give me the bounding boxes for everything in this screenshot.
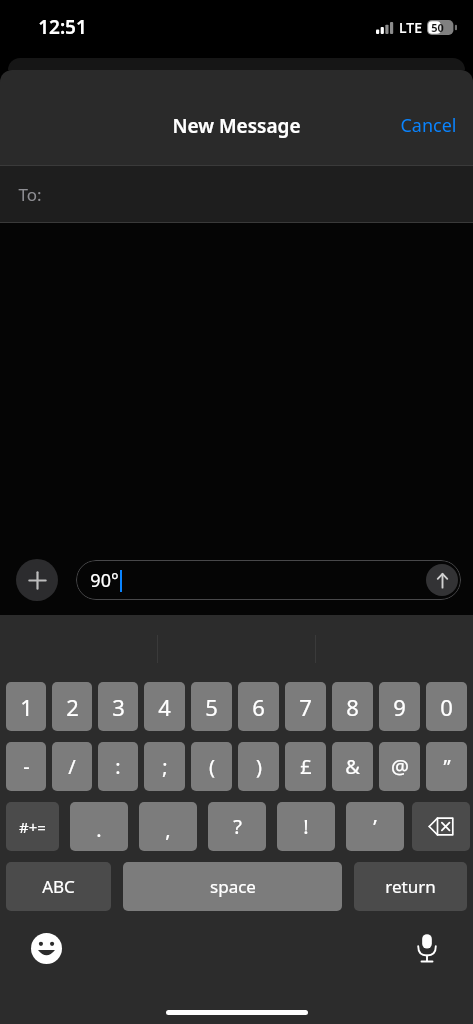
button[interactable]: ; xyxy=(144,742,185,791)
staticText: To: xyxy=(18,183,42,206)
button[interactable]: 2 xyxy=(52,682,92,731)
staticText: #+= xyxy=(19,817,46,837)
staticText: - xyxy=(23,753,30,780)
button[interactable]: Backspace xyxy=(412,802,470,851)
staticText: , xyxy=(165,816,171,843)
button[interactable]: : xyxy=(98,742,138,791)
button[interactable]: Send xyxy=(426,564,458,596)
staticText: return xyxy=(385,875,436,898)
staticText: ; xyxy=(162,753,168,780)
staticText: 5 xyxy=(205,692,218,722)
staticText: ( xyxy=(209,753,215,780)
button[interactable]: £ xyxy=(285,742,326,791)
button[interactable]: ” xyxy=(426,742,467,791)
button[interactable]: return xyxy=(354,862,467,911)
staticText: space xyxy=(210,875,256,898)
staticText: 2 xyxy=(66,692,79,722)
staticText: ” xyxy=(443,753,451,780)
button[interactable]: To: xyxy=(0,165,473,223)
staticText: . xyxy=(96,816,102,843)
staticText: @ xyxy=(391,753,409,780)
button[interactable]: 7 xyxy=(285,682,326,731)
button[interactable]: 5 xyxy=(191,682,232,731)
button[interactable]: 1 xyxy=(6,682,46,731)
button[interactable]: space xyxy=(123,862,342,911)
staticText: ABC xyxy=(42,875,75,898)
button[interactable]: ’ xyxy=(346,802,404,851)
button[interactable]: 6 xyxy=(238,682,279,731)
button[interactable]: 9 xyxy=(379,682,420,731)
staticText: / xyxy=(68,753,76,780)
staticText: 7 xyxy=(299,692,312,722)
button[interactable]: ) xyxy=(238,742,279,791)
button[interactable]: Cancel xyxy=(384,105,473,146)
button[interactable]: Emoji xyxy=(26,928,66,968)
staticText: 3 xyxy=(112,692,125,722)
staticText: 50 xyxy=(431,20,444,35)
button[interactable]: ABC xyxy=(6,862,111,911)
button[interactable]: Add attachment xyxy=(16,559,58,601)
button[interactable]: ? xyxy=(208,802,266,851)
button[interactable]: / xyxy=(52,742,92,791)
button[interactable]: @ xyxy=(379,742,420,791)
button[interactable]: Dictation xyxy=(407,928,447,968)
staticText: : xyxy=(115,753,121,780)
staticText: 12:51 xyxy=(38,14,87,40)
staticText: New Message xyxy=(172,113,301,139)
button[interactable]: 8 xyxy=(332,682,373,731)
staticText: & xyxy=(345,753,360,780)
staticText: £ xyxy=(300,753,312,780)
button[interactable]: #+= xyxy=(6,802,59,851)
button[interactable]: 3 xyxy=(98,682,138,731)
button[interactable]: & xyxy=(332,742,373,791)
staticText: ! xyxy=(303,813,309,840)
staticText: 9 xyxy=(393,692,406,722)
staticText: Cancel xyxy=(400,113,457,138)
button[interactable]: ( xyxy=(191,742,232,791)
button[interactable]: - xyxy=(6,742,46,791)
staticText: 1 xyxy=(20,692,33,722)
staticText: 8 xyxy=(346,692,359,722)
staticText: 6 xyxy=(252,692,265,722)
staticText: 90° xyxy=(90,568,119,593)
button[interactable]: 0 xyxy=(426,682,467,731)
staticText: ’ xyxy=(373,813,377,840)
button[interactable]: . xyxy=(70,802,128,851)
button[interactable]: , xyxy=(139,802,197,851)
button[interactable]: 4 xyxy=(144,682,185,731)
staticText: ? xyxy=(233,813,242,840)
staticText: 0 xyxy=(440,692,453,722)
button[interactable]: ! xyxy=(277,802,335,851)
staticText: ) xyxy=(256,753,262,780)
button[interactable]: 90° xyxy=(76,560,461,600)
staticText: 4 xyxy=(158,692,171,722)
staticText: LTE xyxy=(399,18,422,37)
